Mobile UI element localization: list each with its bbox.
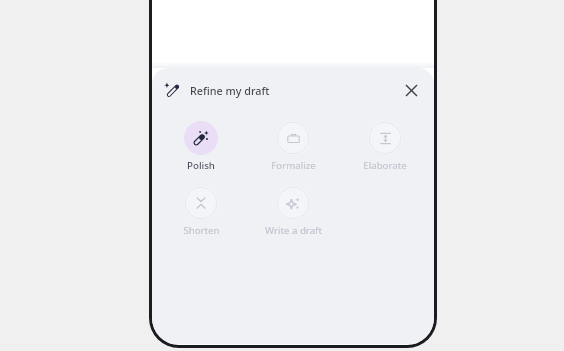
staticText: Write a draft (265, 224, 322, 237)
button[interactable]: Polish (155, 121, 247, 172)
button[interactable]: Shorten (155, 186, 247, 237)
staticText: Elaborate (363, 159, 407, 172)
button[interactable]: Write a draft (247, 186, 339, 237)
staticText: Refine my draft (190, 83, 270, 98)
button[interactable]: Formalize (247, 121, 339, 172)
staticText: Polish (187, 159, 215, 172)
button[interactable]: Elaborate (339, 121, 431, 172)
button[interactable]: Close (400, 79, 422, 101)
staticText: Formalize (271, 159, 316, 172)
staticText: Shorten (183, 224, 220, 237)
